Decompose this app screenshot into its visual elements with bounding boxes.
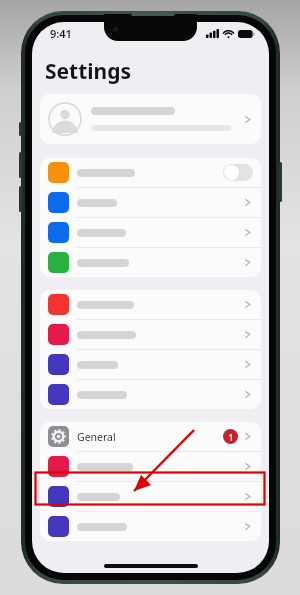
button[interactable]: Settings item [40,380,261,409]
button[interactable]: Apple ID profile [40,94,261,144]
button[interactable]: Settings item [40,482,261,511]
button[interactable]: Settings item [40,452,261,481]
button[interactable]: Settings item [40,320,261,349]
button[interactable]: Settings item [40,248,261,277]
button[interactable]: Settings item [40,512,261,541]
button[interactable]: Settings item [40,218,261,247]
button[interactable]: Settings item [40,158,261,187]
staticText: Settings [45,57,132,86]
button[interactable]: General [40,422,261,451]
button[interactable]: Settings item [40,188,261,217]
staticText: 9:41 [50,26,72,41]
staticText: 1 [228,431,234,443]
button[interactable]: Toggle switch [223,164,253,181]
staticText: General [77,430,116,444]
button[interactable]: Settings item [40,350,261,379]
button[interactable]: Settings item [40,290,261,319]
